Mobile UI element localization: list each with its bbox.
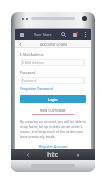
staticText: By creating an account you will be able … xyxy=(20,119,86,139)
button[interactable]: Home xyxy=(74,151,82,159)
staticText: ACCOUNT LOGIN xyxy=(40,42,67,46)
button[interactable]: Forgotten Password xyxy=(20,86,54,91)
button[interactable]: Menu xyxy=(18,31,25,38)
button[interactable]: Password xyxy=(20,77,86,84)
button[interactable]: Login xyxy=(20,95,86,103)
staticText: Password xyxy=(22,79,37,83)
button[interactable]: Register Account xyxy=(39,144,68,149)
button[interactable]: More options xyxy=(82,31,89,38)
button[interactable]: Your Store xyxy=(34,32,52,37)
button[interactable]: Back xyxy=(24,151,32,159)
staticText: htc xyxy=(47,150,59,160)
button[interactable]: E-Mail Address xyxy=(20,59,86,66)
button[interactable]: Search xyxy=(60,31,67,38)
staticText: Login xyxy=(48,97,58,102)
staticText: NEW CUSTOMER xyxy=(40,109,66,113)
staticText: E-Mail Address xyxy=(22,61,45,65)
staticText: Password xyxy=(20,70,36,75)
button[interactable]: Back xyxy=(17,41,23,47)
button[interactable]: Shopping cart xyxy=(71,31,78,38)
staticText: E-Mail Address xyxy=(20,52,44,57)
